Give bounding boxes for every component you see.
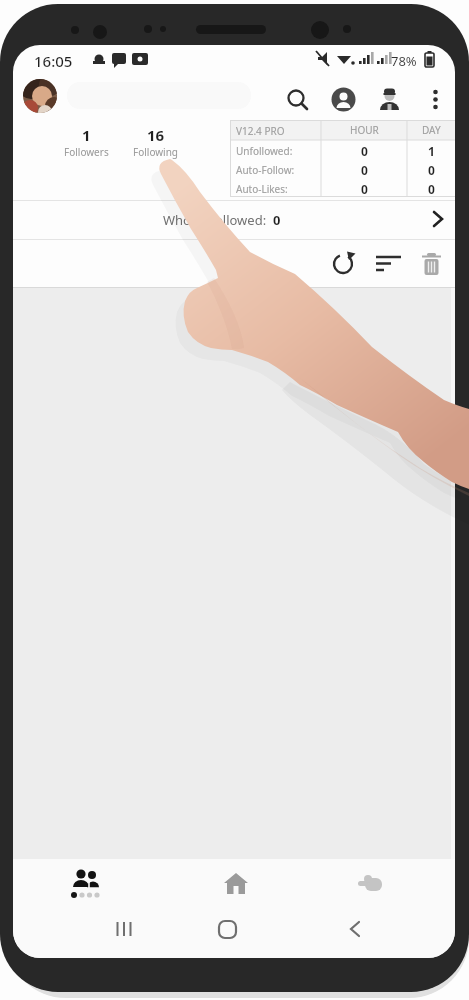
staticText: DAY [422,123,441,137]
button[interactable] [324,913,386,945]
button[interactable] [376,251,401,276]
staticText: 16 [147,125,165,145]
staticText: 16:05 [34,51,73,71]
staticText: Following [133,145,179,159]
staticText: 0 [428,162,435,178]
staticText: Who unfollowed: [163,211,273,229]
staticText: 0 [428,181,435,197]
staticText: 0 [361,181,368,197]
staticText: Unfollowed: [236,144,293,158]
button[interactable] [377,87,402,112]
staticText: Auto-Likes: [236,182,288,196]
button[interactable] [23,79,57,113]
button[interactable] [39,863,133,905]
button[interactable] [93,913,155,945]
staticText: 0 [273,211,281,229]
staticText: 1 [82,125,91,145]
staticText: HOUR [350,123,379,137]
button[interactable] [331,251,356,276]
staticText: V12.4 PRO [236,124,285,138]
button[interactable] [324,863,418,905]
button[interactable] [189,863,283,905]
button[interactable]: 1 [56,125,116,169]
button[interactable]: 16 [126,125,186,169]
button[interactable] [331,87,356,112]
staticText: 1 [428,143,435,159]
staticText: 78% [391,52,417,70]
button[interactable] [196,913,258,945]
staticText: Auto-Follow: [236,163,295,177]
button[interactable] [423,87,448,112]
staticText: 0 [361,143,368,159]
staticText: 0 [361,162,368,178]
button[interactable] [285,87,310,112]
button[interactable]: Who unfollowed: [13,201,455,239]
button[interactable] [419,251,444,276]
staticText: Followers [64,145,109,159]
